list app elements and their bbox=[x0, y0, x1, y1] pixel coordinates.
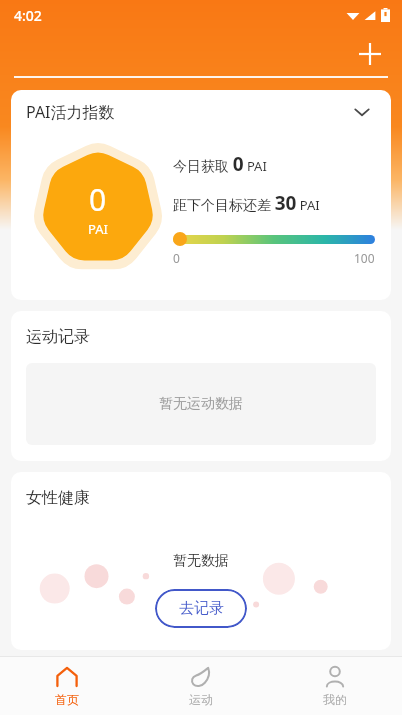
staticText: 女性健康 bbox=[26, 488, 90, 508]
staticText: 距下个目标还差 30 PAI bbox=[173, 190, 320, 216]
staticText: 4:02 bbox=[14, 6, 42, 25]
staticText: 今日获取 0 PAI bbox=[173, 151, 267, 177]
button[interactable]: Add bbox=[352, 36, 388, 72]
staticText: 去记录 bbox=[179, 599, 224, 618]
button[interactable]: 我的 bbox=[268, 657, 402, 715]
staticText: 运动记录 bbox=[26, 327, 90, 347]
staticText: 0 bbox=[173, 250, 180, 266]
staticText: 0 bbox=[89, 179, 107, 220]
staticText: 暂无运动数据 bbox=[159, 395, 243, 413]
staticText: 运动 bbox=[189, 692, 213, 707]
staticText: 100 bbox=[354, 250, 375, 266]
staticText: PAI活力指数 bbox=[26, 101, 115, 123]
button[interactable]: 运动 bbox=[134, 657, 268, 715]
staticText: 首页 bbox=[55, 692, 79, 707]
staticText: PAI bbox=[88, 220, 108, 238]
staticText: 暂无数据 bbox=[173, 552, 229, 570]
button[interactable]: 首页 bbox=[0, 657, 134, 715]
button[interactable]: 去记录 bbox=[155, 589, 247, 628]
staticText: 我的 bbox=[323, 692, 347, 707]
button[interactable]: Collapse bbox=[347, 97, 377, 127]
